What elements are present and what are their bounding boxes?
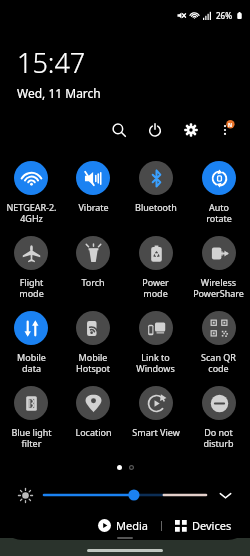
button[interactable]: Auto rotate [187, 157, 250, 232]
button[interactable]: Search [106, 117, 132, 143]
button[interactable]: Brightness slider [44, 484, 206, 506]
staticText: 26% [216, 10, 232, 21]
button[interactable]: Mobile data [0, 307, 62, 382]
button[interactable]: Location [62, 382, 124, 457]
button[interactable]: Bluetooth [124, 157, 187, 232]
button[interactable]: Torch [62, 232, 124, 307]
staticText: Wed, 11 March [17, 85, 101, 101]
button[interactable]: Smart View [124, 382, 187, 457]
staticText: Blue light filter [11, 426, 52, 449]
button[interactable]: Expand brightness [214, 484, 236, 506]
button[interactable]: Wireless PowerShare [187, 232, 250, 307]
staticText: Do not disturb [203, 426, 234, 449]
staticText: NETGEAR-2. 4GHz [6, 201, 57, 224]
button[interactable]: Scan QR code [187, 307, 250, 382]
staticText: Mobile data [17, 351, 46, 374]
button[interactable]: Link to Windows [124, 307, 187, 382]
button[interactable]: Brightness settings [14, 484, 36, 506]
staticText: Auto rotate [206, 201, 232, 224]
button[interactable]: Power mode [124, 232, 187, 307]
button[interactable]: Vibrate [62, 157, 124, 232]
staticText: Torch [81, 276, 105, 288]
staticText: Mobile Hotspot [76, 351, 110, 374]
button[interactable]: Power [142, 117, 168, 143]
staticText: Link to Windows [136, 351, 175, 374]
staticText: Wireless PowerShare [193, 276, 244, 299]
staticText: Vibrate [78, 201, 109, 213]
button[interactable]: Devices [171, 514, 236, 537]
staticText: N [228, 122, 233, 129]
button[interactable]: More options [212, 117, 238, 143]
staticText: Bluetooth [135, 201, 177, 213]
staticText: Media [116, 518, 148, 533]
staticText: Smart View [132, 426, 180, 438]
staticText: Flight mode [19, 276, 44, 299]
button[interactable]: Blue light filter [0, 382, 62, 457]
button[interactable]: Settings [178, 117, 204, 143]
button[interactable]: Flight mode [0, 232, 62, 307]
button[interactable]: Mobile Hotspot [62, 307, 124, 382]
staticText: 15:47 [17, 44, 86, 81]
staticText: Scan QR code [201, 351, 236, 374]
button[interactable]: NETGEAR-2. 4GHz [0, 157, 62, 232]
button[interactable]: Do not disturb [187, 382, 250, 457]
staticText: Power mode [142, 276, 169, 299]
button[interactable]: Media [94, 514, 152, 537]
staticText: Devices [192, 518, 232, 533]
staticText: Location [75, 426, 112, 438]
